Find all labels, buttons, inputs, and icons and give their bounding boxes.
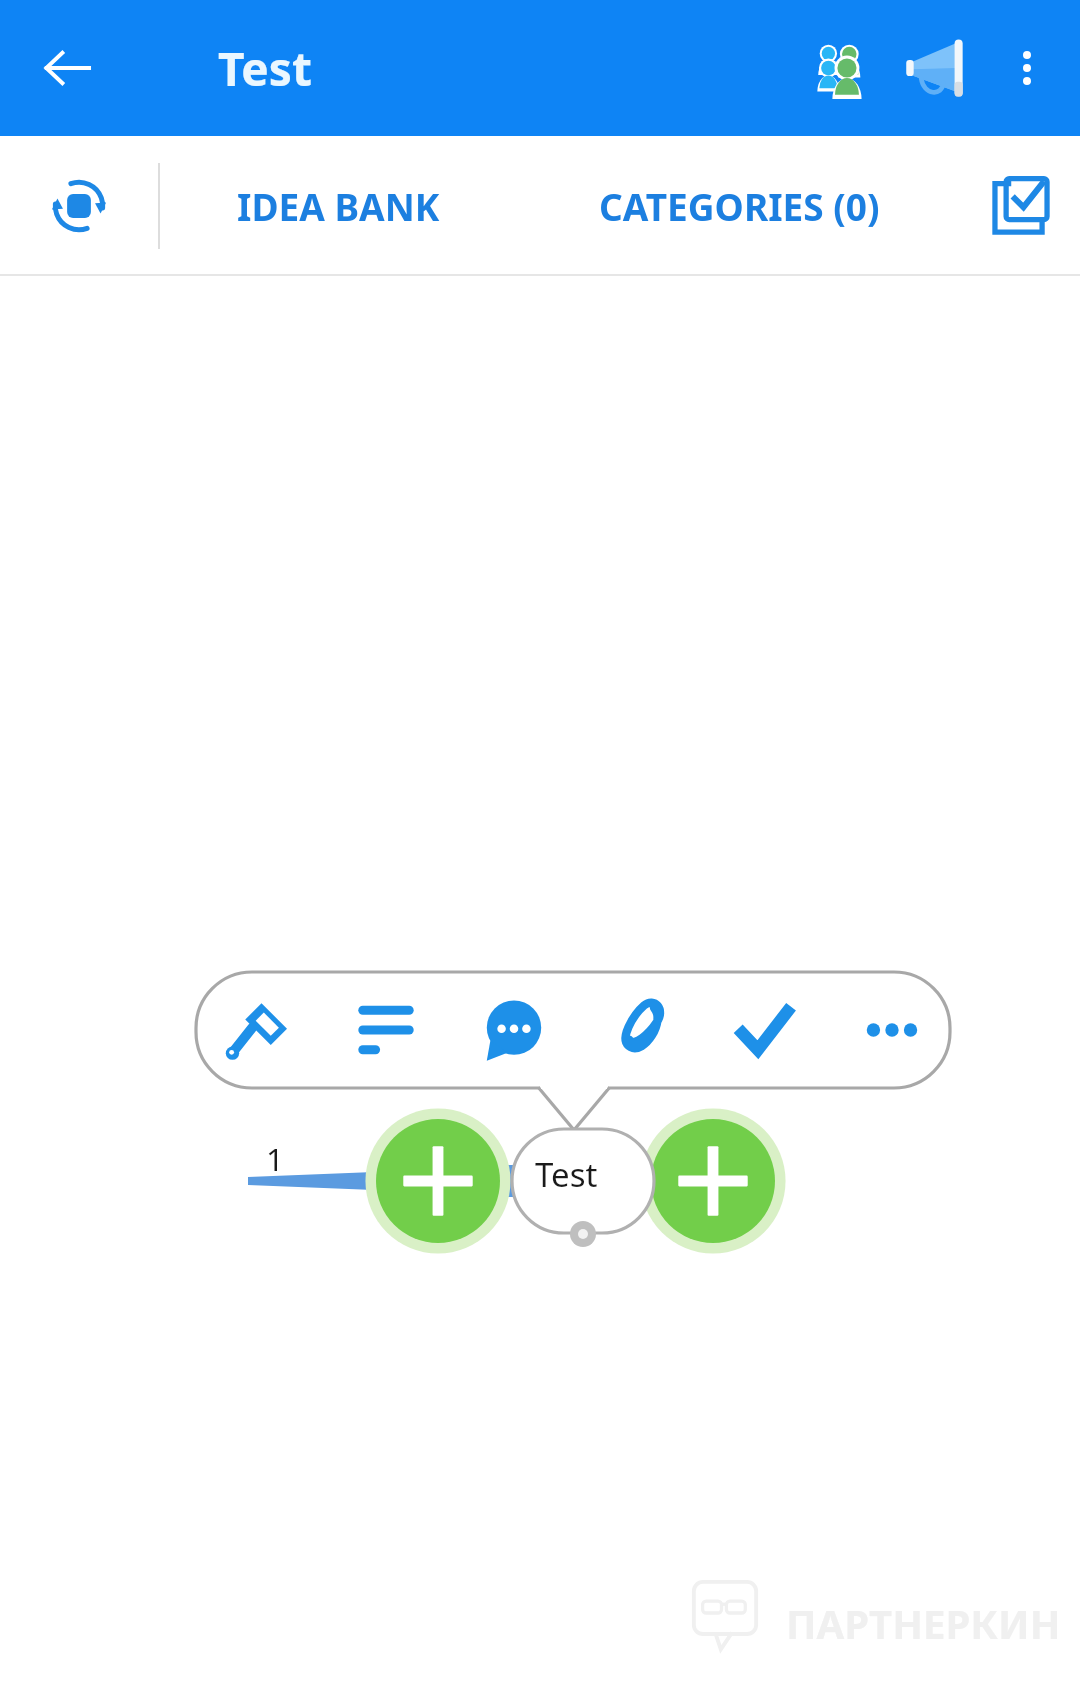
staticText: 1 [266,1138,284,1180]
button[interactable]: Add node left [376,1119,500,1243]
button[interactable]: More [850,988,934,1072]
button[interactable]: Done [722,988,806,1072]
staticText: IDEA BANK [237,181,440,231]
button[interactable]: Back [30,31,104,105]
button[interactable]: CATEGORIES (0) [516,136,962,276]
staticText: ПАРТНЕРКИН [786,1596,1061,1650]
button[interactable]: Add node right [651,1119,775,1243]
staticText: CATEGORIES (0) [599,181,880,231]
button[interactable]: Refresh layout [0,136,158,276]
button[interactable]: Style [216,988,300,1072]
button[interactable]: Comment [472,988,556,1072]
button[interactable]: Test node [512,1129,654,1233]
staticText: Test [218,37,312,100]
button[interactable]: IDEA BANK [160,136,516,276]
button[interactable]: More options [984,25,1070,111]
button[interactable]: Select items [962,136,1080,276]
button[interactable]: Text format [344,988,428,1072]
button[interactable]: Announcements [888,20,984,116]
button[interactable]: Attach [596,988,680,1072]
staticText: Test [535,1152,598,1197]
button[interactable]: Members [792,20,888,116]
